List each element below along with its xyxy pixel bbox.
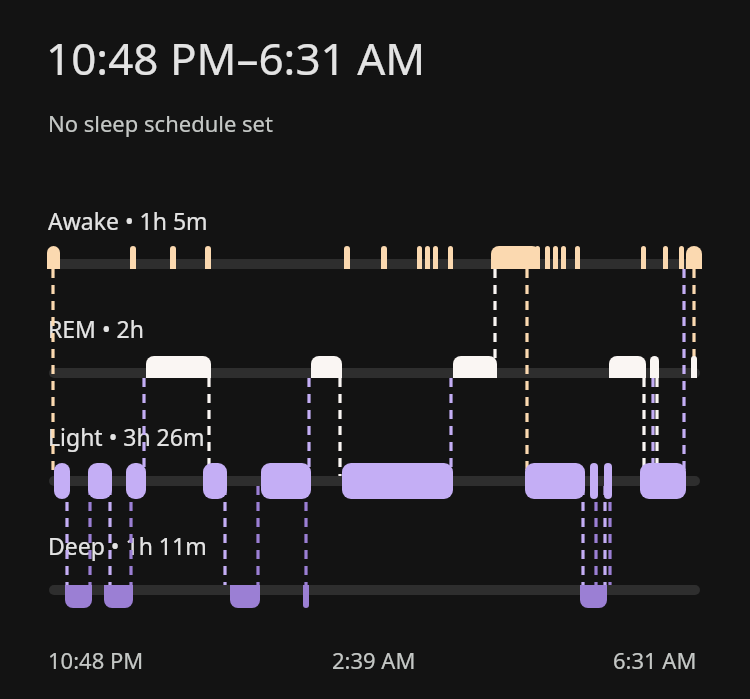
staticText: No sleep schedule set: [48, 108, 273, 138]
staticText: 6:31 AM: [613, 645, 697, 675]
staticText: 2:39 AM: [332, 645, 416, 675]
staticText: 10:48 PM–6:31 AM: [46, 28, 426, 88]
staticText: Light • 3h 26m: [48, 421, 205, 452]
staticText: REM • 2h: [48, 313, 144, 344]
staticText: 10:48 PM: [48, 645, 144, 675]
staticText: Deep • 1h 11m: [48, 530, 207, 561]
button[interactable]: 10:48 PM–6:31 AM: [0, 0, 750, 699]
staticText: Awake • 1h 5m: [48, 205, 208, 236]
